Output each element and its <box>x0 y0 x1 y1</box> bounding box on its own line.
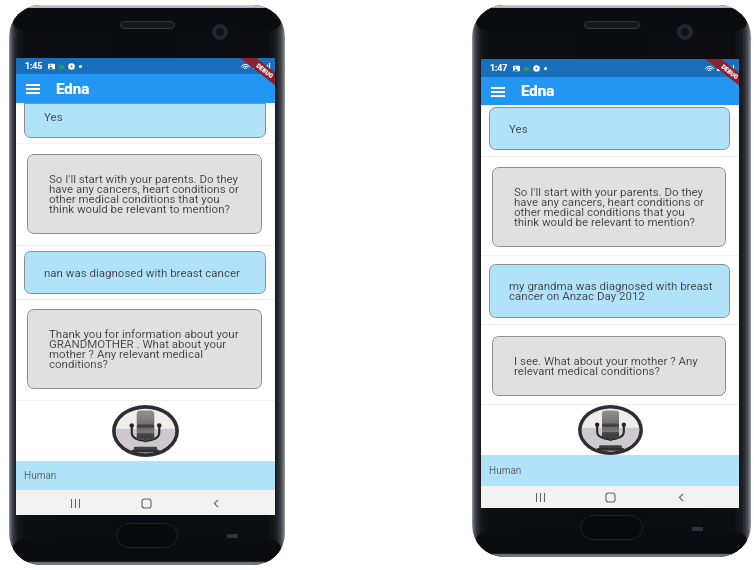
button[interactable]: Human <box>481 455 739 486</box>
staticText: my grandma was diagnosed with breast can… <box>509 279 717 303</box>
button[interactable]: Home <box>598 486 622 508</box>
button[interactable]: So I'll start with your parents. Do they… <box>27 154 262 234</box>
staticText: nan was diagnosed with breast cancer <box>44 266 240 279</box>
button[interactable]: Home <box>134 491 158 515</box>
button[interactable]: Home button <box>116 523 178 548</box>
button[interactable]: Record voice message <box>578 405 643 455</box>
button[interactable]: Back <box>669 486 693 508</box>
staticText: Thank you for information about your GRA… <box>49 327 246 371</box>
staticText: I see. What about your mother ? Any rele… <box>514 354 710 378</box>
staticText: 1:47 <box>490 63 508 73</box>
staticText: Edna <box>521 82 555 100</box>
button[interactable]: Recent apps <box>528 486 552 508</box>
button[interactable]: my grandma was diagnosed with breast can… <box>489 264 730 318</box>
staticText: So I'll start with your parents. Do they… <box>514 185 710 229</box>
button[interactable]: Back <box>204 491 228 515</box>
staticText: Human <box>489 465 522 477</box>
staticText: So I'll start with your parents. Do they… <box>49 172 246 216</box>
staticText: Edna <box>56 80 90 98</box>
staticText: Human <box>24 470 57 482</box>
staticText: DEBUG <box>255 62 275 80</box>
button[interactable]: So I'll start with your parents. Do they… <box>492 167 726 247</box>
button[interactable]: nan was diagnosed with breast cancer <box>24 251 266 294</box>
button[interactable]: Yes <box>24 103 266 138</box>
button[interactable]: Record voice message <box>112 405 179 457</box>
button[interactable]: Yes <box>489 107 730 150</box>
button[interactable]: Open navigation drawer <box>21 77 44 100</box>
staticText: DEBUG <box>720 63 739 81</box>
button[interactable]: Human <box>16 461 275 490</box>
button[interactable]: Home button <box>580 515 643 540</box>
staticText: 1:45 <box>25 61 43 71</box>
button[interactable]: Recent apps <box>63 491 87 515</box>
staticText: Yes <box>509 122 528 135</box>
button[interactable]: Thank you for information about your GRA… <box>27 309 262 389</box>
button[interactable]: Open navigation drawer <box>486 80 509 103</box>
button[interactable]: I see. What about your mother ? Any rele… <box>492 336 726 396</box>
staticText: Yes <box>44 110 63 123</box>
